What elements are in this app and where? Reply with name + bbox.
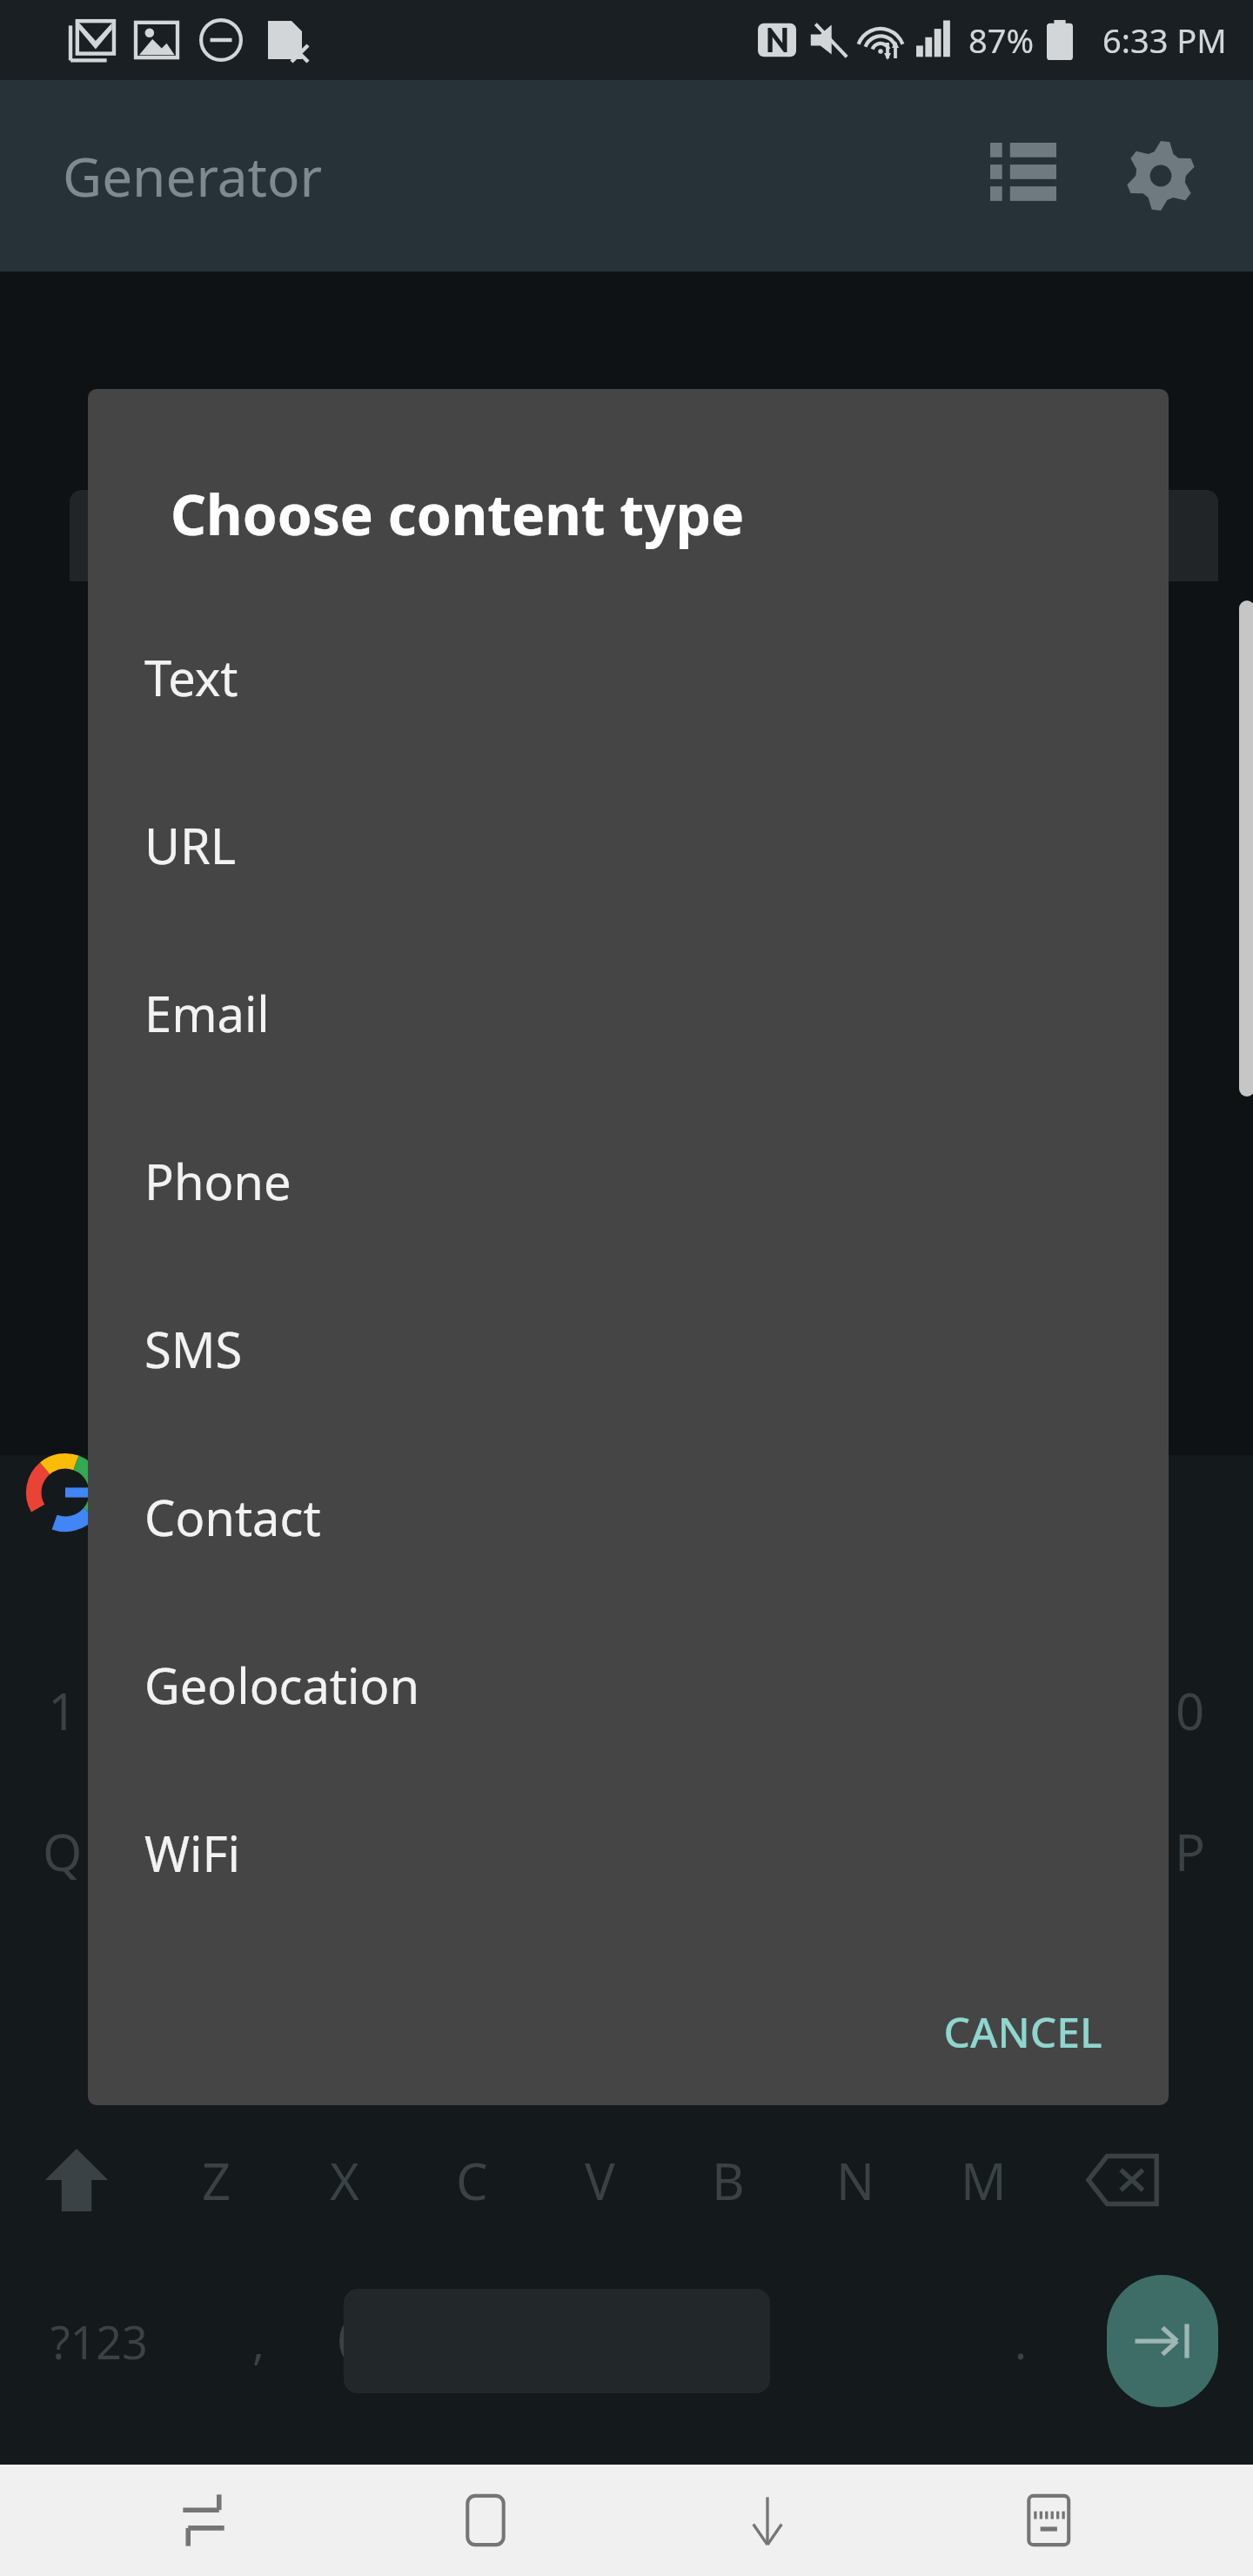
staticText: 87%	[968, 17, 1035, 63]
staticText: 6:33 PM	[1102, 17, 1227, 63]
staticText: B	[712, 2146, 745, 2215]
button[interactable]: Text	[88, 593, 1169, 761]
button[interactable]: History list	[976, 129, 1070, 223]
staticText: CANCEL	[943, 2003, 1102, 2060]
staticText: M	[961, 2146, 1007, 2215]
staticText: C	[456, 2146, 488, 2215]
staticText: Z	[202, 2146, 231, 2215]
staticText: Contact	[144, 1484, 321, 1550]
button[interactable]: Geolocation	[88, 1600, 1169, 1768]
button[interactable]: Back	[689, 2465, 846, 2576]
staticText: Email	[144, 980, 270, 1046]
staticText: Generator	[63, 139, 323, 212]
staticText: P	[1175, 1817, 1206, 1886]
button[interactable]: SMS	[88, 1265, 1169, 1432]
button[interactable]: WiFi	[88, 1768, 1169, 1936]
staticText: ?123	[50, 2311, 148, 2372]
button[interactable]: Settings	[1114, 129, 1208, 223]
button[interactable]: Email	[88, 929, 1169, 1097]
staticText: ,	[252, 2311, 265, 2372]
button[interactable]: Home	[407, 2465, 564, 2576]
staticText: WiFi	[144, 1820, 241, 1886]
staticText: Text	[144, 644, 238, 710]
button[interactable]: Recent apps	[125, 2465, 282, 2576]
staticText: N	[836, 2146, 875, 2215]
staticText: V	[585, 2146, 615, 2215]
staticText: Choose content type	[171, 476, 745, 552]
staticText: .	[1015, 2311, 1027, 2372]
staticText: 1	[48, 1676, 77, 1745]
staticText: 3	[298, 1676, 328, 1745]
staticText: SMS	[144, 1316, 243, 1382]
staticText: X	[330, 2146, 359, 2215]
button[interactable]: Switch keyboard	[971, 2465, 1128, 2576]
button[interactable]: CANCEL	[914, 1979, 1132, 2084]
button[interactable]: Contact	[88, 1432, 1169, 1600]
staticText: Phone	[144, 1148, 291, 1214]
staticText: URL	[144, 812, 237, 878]
staticText: W	[164, 1817, 211, 1886]
staticText: Q	[43, 1817, 83, 1886]
button[interactable]: URL	[88, 761, 1169, 929]
staticText: Geolocation	[144, 1652, 420, 1718]
staticText: 0	[1176, 1676, 1205, 1745]
staticText: 2	[173, 1676, 203, 1745]
button[interactable]: Phone	[88, 1097, 1169, 1265]
